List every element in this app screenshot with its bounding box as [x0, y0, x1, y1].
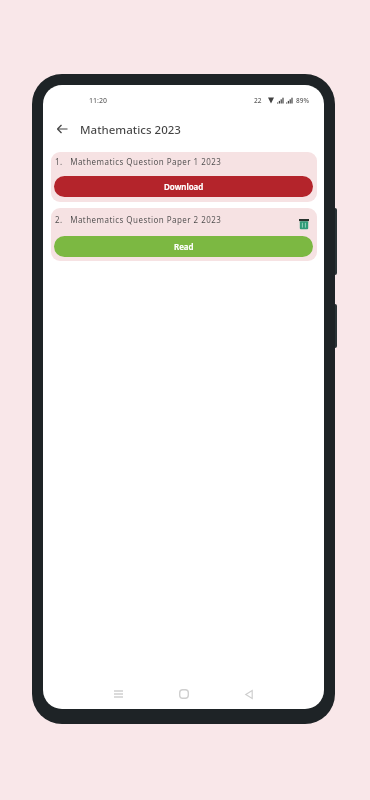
staticText: 1. Mathematics Question Paper 1 2023: [55, 156, 222, 167]
button[interactable]: Download: [54, 176, 313, 197]
button[interactable]: [107, 683, 129, 705]
staticText: 11:20: [89, 96, 107, 106]
staticText: Download: [164, 181, 204, 192]
staticText: Mathematics 2023: [80, 122, 181, 138]
button[interactable]: Read: [54, 236, 313, 257]
button[interactable]: [51, 118, 73, 140]
button[interactable]: [295, 215, 313, 233]
staticText: 22: [254, 96, 262, 105]
staticText: 89%: [296, 96, 309, 105]
button[interactable]: [173, 683, 195, 705]
staticText: Read: [174, 241, 194, 252]
button[interactable]: [238, 683, 260, 705]
staticText: 2. Mathematics Question Paper 2 2023: [55, 214, 222, 225]
